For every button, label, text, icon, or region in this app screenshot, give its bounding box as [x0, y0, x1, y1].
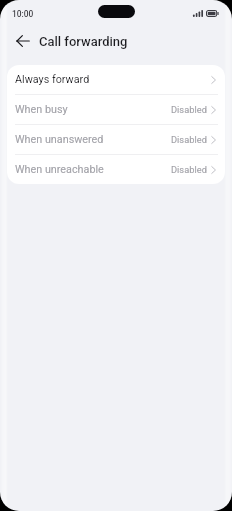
staticText: When busy — [15, 103, 68, 116]
staticText: When unreachable — [15, 163, 104, 176]
staticText: Always forward — [15, 73, 90, 86]
button[interactable]: When busy — [7, 95, 225, 124]
staticText: 10:00 — [12, 9, 34, 19]
button[interactable]: Always forward — [7, 65, 225, 94]
staticText: When unanswered — [15, 133, 104, 146]
button[interactable]: When unanswered — [7, 125, 225, 154]
button[interactable]: When unreachable — [7, 155, 225, 184]
button[interactable]: Back — [11, 29, 35, 53]
staticText: Call forwarding — [39, 34, 128, 49]
staticText: Disabled — [171, 134, 207, 145]
staticText: Disabled — [171, 164, 207, 175]
staticText: Disabled — [171, 104, 207, 115]
